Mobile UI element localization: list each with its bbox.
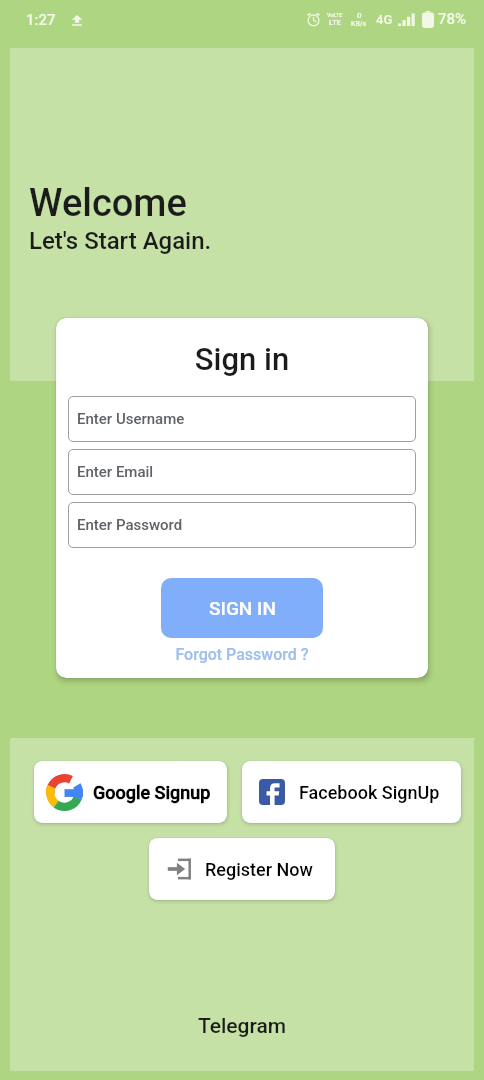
staticText: LTE xyxy=(329,18,341,27)
staticText: 0 xyxy=(357,11,362,20)
staticText: 78% xyxy=(438,10,467,28)
staticText: 4G xyxy=(376,12,393,27)
staticText: Enter Password xyxy=(77,516,183,534)
staticText: Forgot Password ? xyxy=(175,645,309,664)
staticText: Let's Start Again. xyxy=(29,227,212,255)
staticText: KB/s xyxy=(351,20,367,28)
button[interactable]: Enter Password xyxy=(68,502,416,548)
button[interactable]: SIGN IN xyxy=(161,578,323,638)
staticText: Register Now xyxy=(205,859,313,880)
button[interactable]: Enter Email xyxy=(68,449,416,495)
button[interactable]: Google Signup xyxy=(34,761,227,823)
staticText: Sign in xyxy=(56,341,428,377)
button[interactable]: Enter Username xyxy=(68,396,416,442)
button[interactable]: Forgot Password ? xyxy=(175,645,309,664)
button[interactable]: Register Now xyxy=(149,838,335,900)
staticText: Telegram xyxy=(10,1014,474,1039)
staticText: Enter Email xyxy=(77,463,154,481)
staticText: 1:27 xyxy=(26,11,56,29)
staticText: Enter Username xyxy=(77,410,185,428)
staticText: VoLTE xyxy=(327,12,343,18)
staticText: Google Signup xyxy=(93,782,211,803)
staticText: SIGN IN xyxy=(209,597,276,619)
staticText: Facebook SignUp xyxy=(299,782,440,803)
staticText: Welcome xyxy=(29,181,187,226)
button[interactable]: Facebook SignUp xyxy=(242,761,461,823)
